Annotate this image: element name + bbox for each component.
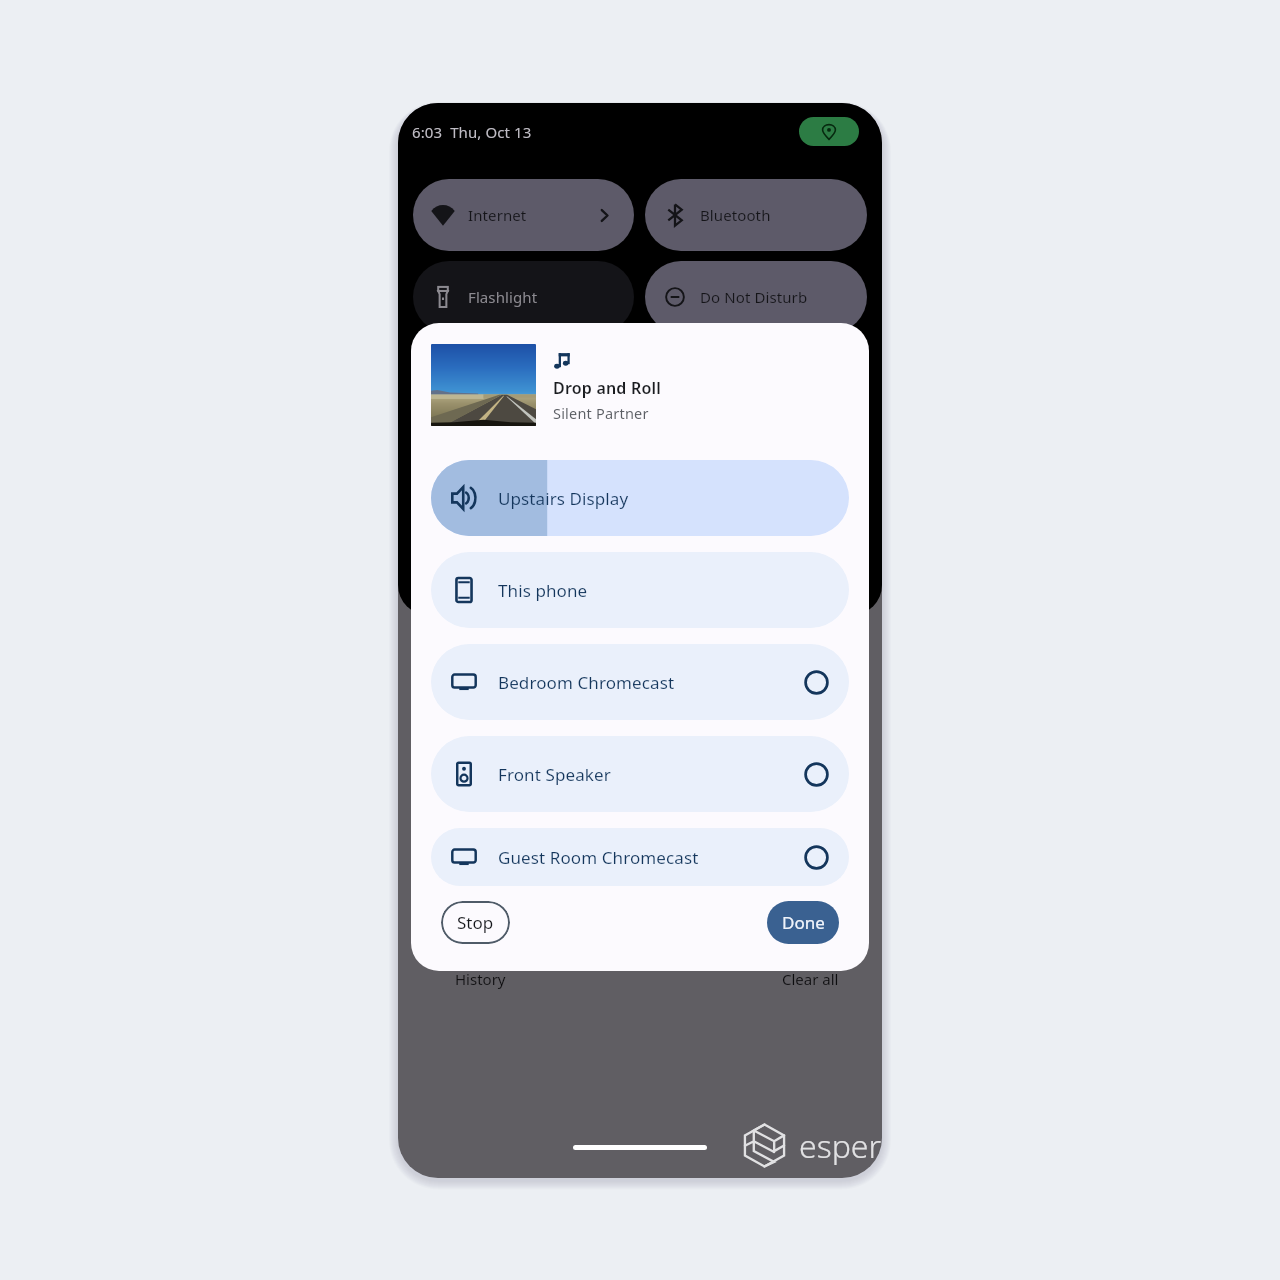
staticText: Silent Partner (553, 403, 649, 423)
staticText: Bluetooth (700, 205, 771, 225)
button[interactable]: Do Not Disturb (645, 261, 867, 333)
staticText: History (455, 969, 506, 989)
staticText: Bedroom Chromecast (498, 671, 675, 694)
staticText: Guest Room Chromecast (498, 846, 699, 869)
button[interactable]: Upstairs Display (431, 460, 849, 536)
staticText: Upstairs Display (498, 487, 629, 510)
staticText: Flashlight (468, 287, 538, 307)
staticText: This phone (498, 579, 588, 602)
button[interactable]: Bedroom Chromecast (431, 644, 849, 720)
staticText: Drop and Roll (553, 377, 661, 399)
button[interactable]: Internet (413, 179, 634, 251)
staticText: Stop (457, 911, 494, 934)
button[interactable]: Location active (799, 117, 859, 146)
button[interactable]: Done (767, 901, 839, 944)
button[interactable]: Front Speaker (431, 736, 849, 812)
staticText: Done (782, 911, 825, 934)
button[interactable]: Bluetooth (645, 179, 867, 251)
staticText: Do Not Disturb (700, 287, 808, 307)
staticText: 6:03 Thu, Oct 13 (412, 122, 532, 142)
staticText: Internet (468, 205, 527, 225)
staticText: Clear all (782, 969, 839, 989)
button[interactable]: Flashlight (413, 261, 634, 333)
staticText: esper (799, 1124, 882, 1168)
button[interactable]: This phone (431, 552, 849, 628)
button[interactable]: Guest Room Chromecast (431, 828, 849, 886)
button[interactable]: Stop (441, 901, 510, 944)
staticText: Front Speaker (498, 763, 611, 786)
